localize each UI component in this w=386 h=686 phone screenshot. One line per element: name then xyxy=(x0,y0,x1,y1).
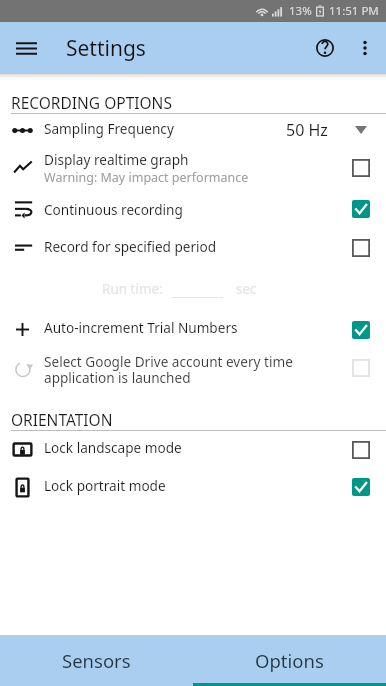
button[interactable]: Toggle setting xyxy=(344,231,378,265)
staticText: Record for specified period xyxy=(44,237,217,256)
staticText: Auto-increment Trial Numbers xyxy=(44,318,238,337)
staticText: Options xyxy=(255,648,324,673)
button[interactable]: Toggle setting xyxy=(344,192,378,226)
staticText: Settings xyxy=(66,34,146,63)
button[interactable]: Lock portrait mode xyxy=(0,468,386,506)
button[interactable]: Options xyxy=(193,635,386,686)
button[interactable]: Continuous recording xyxy=(0,193,386,230)
button[interactable]: Toggle setting xyxy=(344,470,378,504)
button[interactable]: Lock landscape mode xyxy=(0,431,386,468)
staticText: 50 Hz xyxy=(286,119,328,141)
button[interactable]: Toggle setting xyxy=(344,433,378,467)
staticText: RECORDING OPTIONS xyxy=(11,92,172,113)
button[interactable]: More options xyxy=(344,27,386,69)
button[interactable]: Help xyxy=(306,24,344,72)
staticText: Sensors xyxy=(62,648,131,673)
staticText: sec xyxy=(236,280,257,298)
staticText: ORIENTATION xyxy=(11,409,113,430)
button[interactable]: Sensors xyxy=(0,635,193,686)
button[interactable]: Toggle setting xyxy=(344,151,378,185)
staticText: Display realtime graph xyxy=(44,150,189,169)
button[interactable]: Record for specified period xyxy=(0,230,386,266)
button[interactable]: Select Google Drive account every time a… xyxy=(0,348,386,394)
staticText: Continuous recording xyxy=(44,200,183,219)
staticText: Select Google Drive account every time a… xyxy=(44,352,336,387)
button[interactable]: Toggle setting xyxy=(344,351,378,385)
button[interactable]: Display realtime graph xyxy=(0,146,386,193)
staticText: 11:51 PM xyxy=(329,3,379,19)
staticText: Sampling Frequency xyxy=(44,119,174,138)
staticText: Lock landscape mode xyxy=(44,438,182,457)
staticText: Lock portrait mode xyxy=(44,476,166,495)
button[interactable]: Auto-increment Trial Numbers xyxy=(0,311,386,348)
button[interactable]: Sampling Frequency xyxy=(0,114,386,146)
button[interactable]: Toggle setting xyxy=(344,313,378,347)
staticText: Warning: May impact performance xyxy=(44,169,249,186)
staticText: 13% xyxy=(289,3,312,19)
staticText: Run time: xyxy=(102,280,163,298)
button[interactable]: Menu xyxy=(0,22,52,74)
